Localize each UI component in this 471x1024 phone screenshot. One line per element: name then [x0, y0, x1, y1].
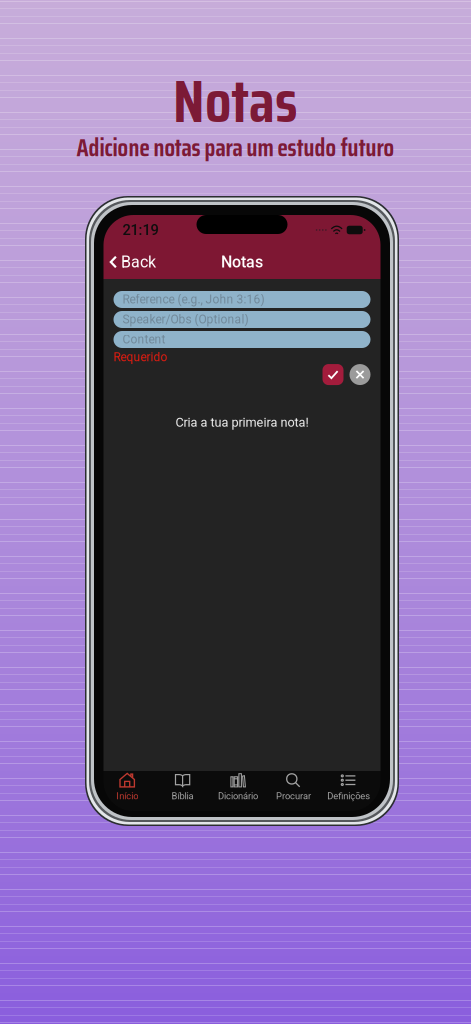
- button[interactable]: Back: [103, 245, 164, 279]
- button[interactable]: Procurar: [266, 771, 321, 803]
- staticText: Reference (e.g., John 3:16): [122, 292, 264, 307]
- staticText: Notas: [173, 54, 298, 148]
- staticText: Cria a tua primeira nota!: [175, 415, 308, 430]
- staticText: Requerido: [113, 350, 167, 364]
- staticText: Speaker/Obs (Optional): [122, 312, 248, 327]
- staticText: Bíblia: [172, 790, 194, 801]
- staticText: Início: [116, 790, 138, 801]
- button[interactable]: Dicionário: [210, 771, 266, 803]
- button[interactable]: Guardar nota: [322, 364, 343, 385]
- button[interactable]: Cancelar: [349, 364, 370, 385]
- staticText: 21:19: [122, 221, 158, 239]
- staticText: Back: [121, 253, 156, 271]
- staticText: Content: [122, 332, 165, 347]
- button[interactable]: Início: [99, 771, 155, 803]
- staticText: Definições: [327, 790, 370, 801]
- button[interactable]: Definições: [321, 771, 376, 803]
- staticText: Adicione notas para um estudo futuro: [76, 129, 394, 167]
- staticText: Procurar: [276, 790, 311, 801]
- staticText: Notas: [221, 253, 263, 271]
- button[interactable]: Bíblia: [155, 771, 210, 803]
- staticText: Dicionário: [218, 790, 258, 801]
